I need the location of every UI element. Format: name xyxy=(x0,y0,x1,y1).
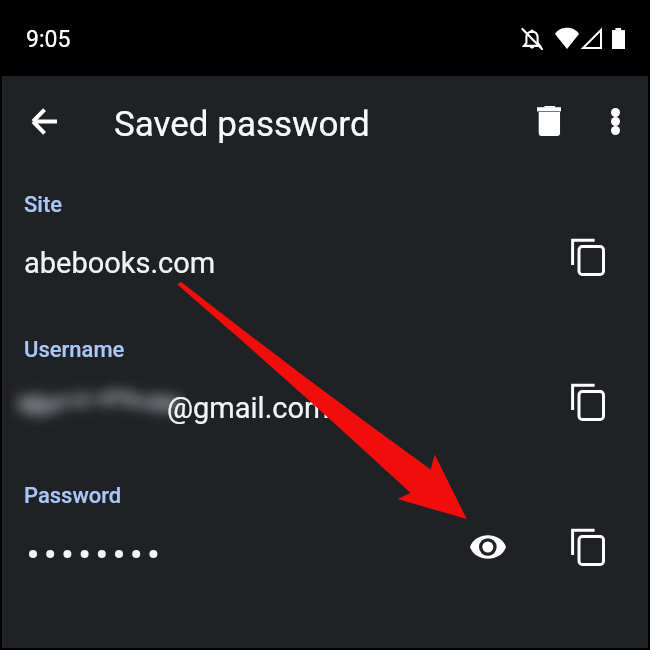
button[interactable]: Back xyxy=(18,95,70,147)
button[interactable]: Delete xyxy=(523,95,575,147)
staticText: Site xyxy=(24,192,63,218)
staticText: Username xyxy=(24,337,125,363)
button[interactable]: Site xyxy=(4,175,650,287)
staticText: abebooks.com xyxy=(24,246,216,280)
staticText: @gmail.com xyxy=(167,391,330,425)
button[interactable]: Username xyxy=(4,320,650,432)
button[interactable]: Copy site xyxy=(562,231,614,283)
staticText: Password xyxy=(24,483,122,509)
staticText: Saved password xyxy=(114,104,370,145)
button[interactable]: Copy password xyxy=(562,521,614,573)
staticText: 9:05 xyxy=(26,26,71,53)
button[interactable]: Password xyxy=(4,466,650,578)
button[interactable]: Show password xyxy=(459,521,511,573)
button[interactable]: Copy username xyxy=(562,376,614,428)
button[interactable]: More options xyxy=(589,95,641,147)
